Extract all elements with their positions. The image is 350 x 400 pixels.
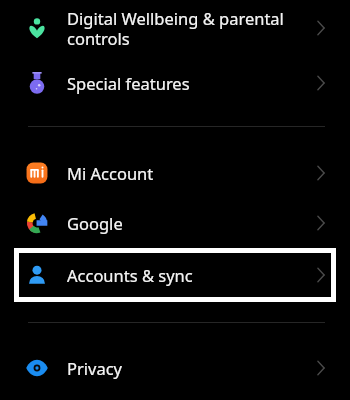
button[interactable]: Privacy [0, 343, 350, 393]
staticText: Accounts & sync [67, 264, 193, 286]
button[interactable]: Accounts & sync [0, 249, 350, 301]
button[interactable]: Mi Account [0, 148, 350, 198]
staticText: Special features [67, 72, 190, 94]
button[interactable]: Google [0, 198, 350, 248]
staticText: Digital Wellbeing & parental controls [67, 7, 284, 50]
button[interactable]: Digital Wellbeing & parental controls [0, 0, 350, 56]
staticText: Mi Account [67, 162, 154, 184]
staticText: Privacy [67, 357, 123, 379]
button[interactable]: Special features [0, 58, 350, 108]
other: Accounts & sync highlighted [14, 248, 336, 302]
staticText: Google [67, 212, 123, 234]
